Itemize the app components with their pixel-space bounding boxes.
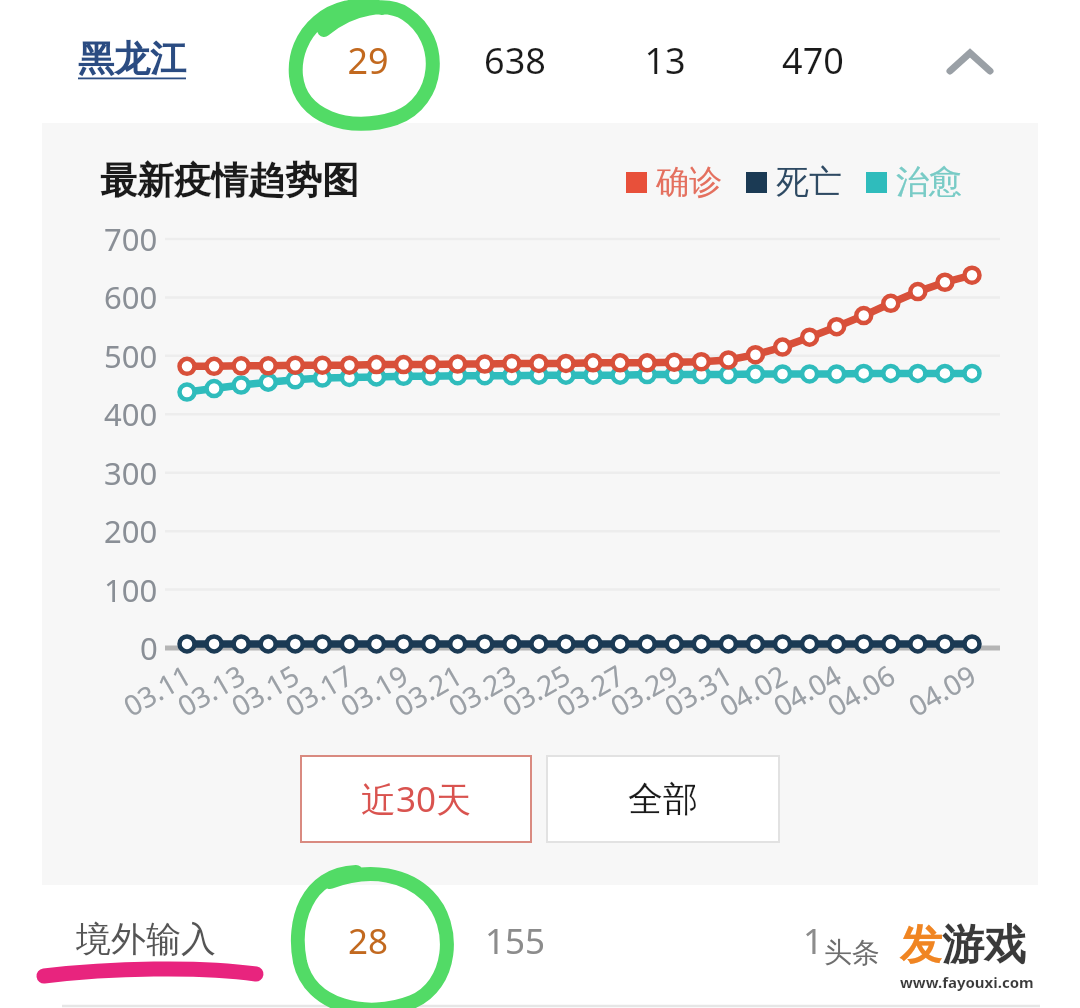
staticText: 04.09 — [901, 655, 983, 724]
staticText: 近30天 — [361, 775, 472, 823]
staticText: 03.21 — [387, 655, 469, 724]
staticText: 28 — [348, 917, 389, 965]
staticText: 游戏 — [942, 919, 1026, 972]
staticText: 治愈 — [896, 161, 962, 203]
staticText: 500 — [104, 335, 158, 377]
staticText: 03.27 — [549, 655, 631, 724]
staticText: www.fayouxi.com — [900, 972, 1034, 992]
button[interactable]: Collapse — [928, 26, 1012, 98]
staticText: 700 — [104, 218, 158, 260]
staticText: 境外输入 — [76, 917, 216, 961]
staticText: 03.15 — [224, 655, 306, 724]
staticText: 发 — [900, 919, 942, 972]
button[interactable]: 近30天 — [300, 755, 532, 843]
staticText: 03.13 — [170, 655, 252, 724]
staticText: 600 — [104, 276, 158, 318]
staticText: 确诊 — [656, 161, 722, 203]
staticText: 638 — [484, 36, 546, 85]
staticText: 29 — [347, 36, 389, 85]
staticText: 03.31 — [657, 655, 739, 724]
staticText: 04.04 — [766, 655, 848, 724]
staticText: 300 — [104, 452, 158, 494]
staticText: 全部 — [628, 777, 698, 821]
staticText: 155 — [485, 917, 546, 965]
button[interactable]: 全部 — [546, 755, 780, 843]
staticText: 03.11 — [116, 655, 198, 724]
staticText: 04.06 — [820, 655, 902, 724]
staticText: 0 — [140, 627, 158, 669]
button[interactable]: 黑龙江 — [0, 0, 1080, 123]
staticText: 黑龙江 — [78, 36, 186, 81]
staticText: 04.02 — [712, 655, 794, 724]
staticText: 1 — [803, 917, 824, 965]
staticText: 死亡 — [776, 161, 842, 203]
staticText: 400 — [104, 393, 158, 435]
staticText: 最新疫情趋势图 — [100, 157, 359, 204]
staticText: 头条 — [824, 935, 880, 970]
staticText: 470 — [782, 36, 844, 85]
staticText: 13 — [644, 36, 686, 85]
staticText: 100 — [104, 569, 158, 611]
staticText: 03.19 — [333, 655, 415, 724]
staticText: 200 — [104, 510, 158, 552]
staticText: 03.23 — [441, 655, 523, 724]
staticText: 03.29 — [603, 655, 685, 724]
staticText: 03.25 — [495, 655, 577, 724]
staticText: 03.17 — [278, 655, 360, 724]
button[interactable]: 境外输入 — [0, 885, 1080, 1008]
